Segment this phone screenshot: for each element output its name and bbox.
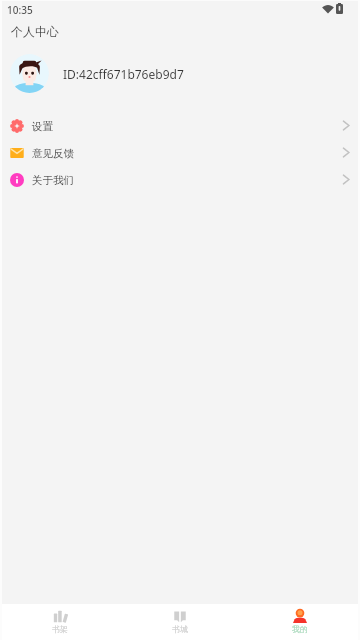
button[interactable]: 我的 <box>240 604 360 640</box>
button[interactable]: 书架 <box>0 604 120 640</box>
staticText: 我的 <box>292 624 308 634</box>
button[interactable]: 书城 <box>120 604 240 640</box>
button[interactable]: ID:42cff671b76eb9d7 <box>0 50 360 97</box>
staticText: 设置 <box>32 120 53 133</box>
staticText: 个人中心 <box>11 24 59 39</box>
button[interactable]: 关于我们 <box>0 166 360 193</box>
staticText: 书城 <box>172 624 188 634</box>
button[interactable]: 设置 <box>0 112 360 139</box>
staticText: 意见反馈 <box>32 147 74 160</box>
staticText: ID:42cff671b76eb9d7 <box>63 66 184 82</box>
staticText: 关于我们 <box>32 174 74 187</box>
button[interactable]: 意见反馈 <box>0 139 360 166</box>
staticText: 书架 <box>52 624 68 634</box>
staticText: 10:35 <box>7 3 33 17</box>
